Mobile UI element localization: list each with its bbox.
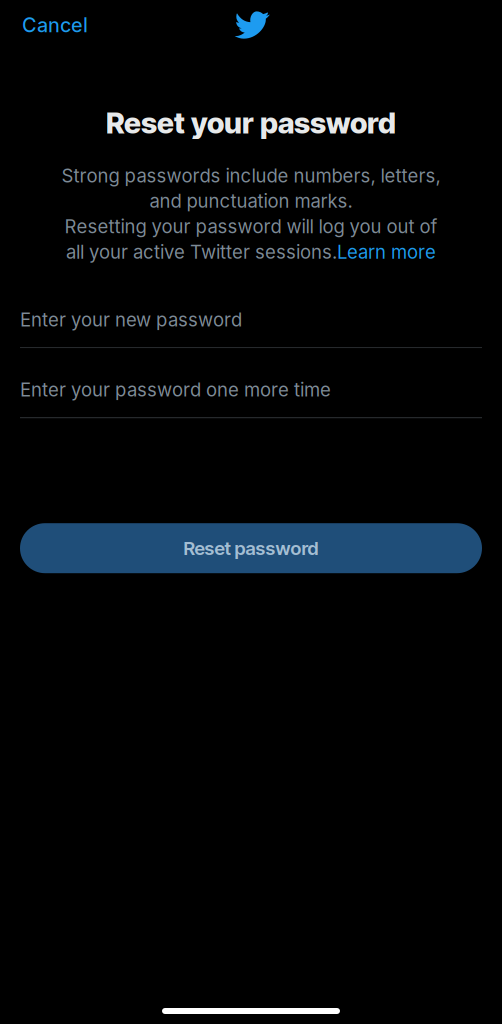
button[interactable]: Learn more — [337, 241, 436, 263]
staticText: all your active Twitter sessions. — [66, 241, 337, 263]
button[interactable]: Reset password — [20, 523, 482, 573]
staticText: Enter your password one more time — [20, 378, 331, 401]
button[interactable]: Enter your new password — [20, 303, 482, 348]
staticText: Cancel — [22, 13, 88, 37]
button[interactable]: Cancel — [20, 4, 102, 46]
staticText: Resetting your password will log you out… — [64, 215, 437, 238]
button[interactable]: Enter your password one more time — [20, 373, 482, 418]
staticText: Reset your password — [106, 105, 396, 140]
staticText: Enter your new password — [20, 308, 242, 331]
staticText: Learn more — [337, 241, 436, 263]
staticText: Strong passwords include numbers, letter… — [61, 164, 440, 187]
staticText: and punctuation marks. — [149, 190, 352, 212]
staticText: Reset password — [183, 537, 318, 559]
